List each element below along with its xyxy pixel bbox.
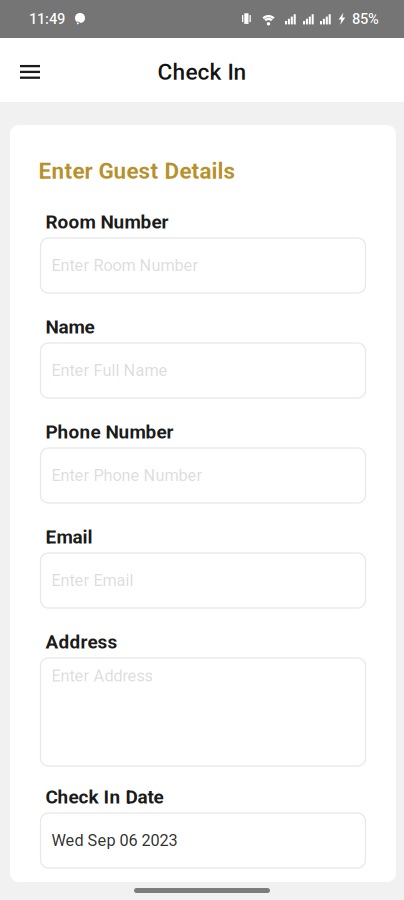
staticText: Enter Email xyxy=(51,571,133,590)
button[interactable]: Enter Address xyxy=(40,658,365,766)
staticText: Address xyxy=(45,631,117,653)
button[interactable]: Open navigation menu xyxy=(8,50,52,94)
staticText: Wed Sep 06 2023 xyxy=(51,831,177,850)
staticText: Enter Room Number xyxy=(51,256,198,275)
staticText: Enter Address xyxy=(51,666,152,686)
staticText: Email xyxy=(45,526,92,548)
staticText: Name xyxy=(45,316,94,338)
button[interactable]: Enter Phone Number xyxy=(40,448,365,503)
staticText: Enter Guest Details xyxy=(38,158,235,184)
staticText: Room Number xyxy=(45,211,168,233)
button[interactable]: Wed Sep 06 2023 xyxy=(40,813,365,868)
button[interactable]: Enter Email xyxy=(40,553,365,608)
staticText: Phone Number xyxy=(45,421,173,443)
button[interactable]: Enter Full Name xyxy=(40,343,365,398)
staticText: 11:49 xyxy=(29,10,65,28)
staticText: 85% xyxy=(352,10,379,28)
staticText: Check In xyxy=(157,59,246,85)
staticText: Check In Date xyxy=(45,786,163,808)
staticText: Enter Full Name xyxy=(51,361,167,380)
button[interactable]: Enter Room Number xyxy=(40,238,365,293)
staticText: Enter Phone Number xyxy=(51,466,202,485)
